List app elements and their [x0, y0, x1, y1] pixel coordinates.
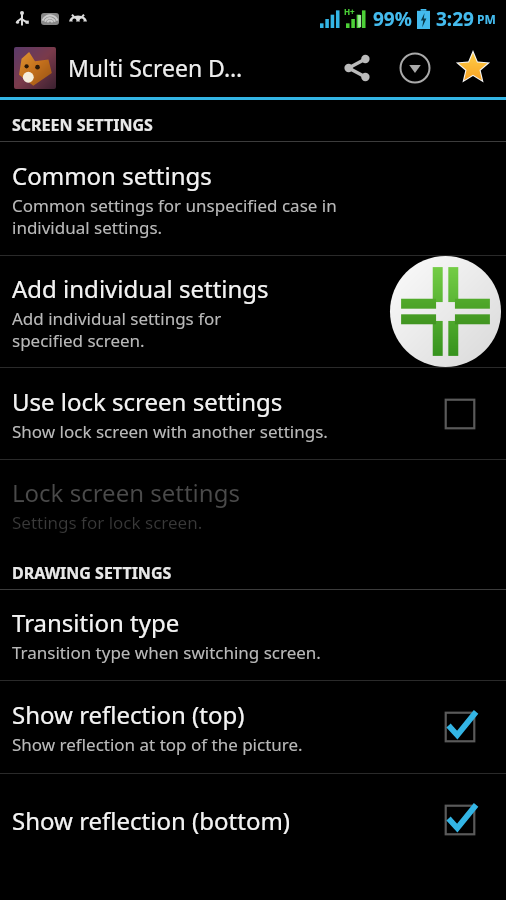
staticText: Add individual settings for specified sc… [12, 307, 222, 352]
staticText: 99% [373, 6, 412, 32]
button[interactable]: Add individual settings [0, 256, 506, 367]
staticText: Show reflection at top of the picture. [12, 733, 303, 756]
button[interactable]: Common settings [0, 142, 506, 255]
staticText: Show lock screen with another settings. [12, 420, 328, 443]
button[interactable]: More options [386, 39, 444, 97]
staticText: Lock screen settings [12, 476, 240, 509]
staticText: Add individual settings [12, 272, 269, 305]
staticText: Show reflection (bottom) [12, 804, 291, 837]
staticText: SCREEN SETTINGS [12, 114, 153, 136]
staticText: Use lock screen settings [12, 385, 283, 418]
staticText: PM [477, 11, 496, 27]
button[interactable]: Favorite [444, 39, 502, 97]
button[interactable]: Transition type [0, 590, 506, 680]
staticText: Settings for lock screen. [12, 511, 203, 534]
button[interactable]: Use lock screen settings [0, 368, 506, 459]
button[interactable]: Show reflection (top) [0, 681, 506, 773]
staticText: Transition type [12, 606, 180, 639]
staticText: 3:29 [436, 6, 474, 32]
staticText: H+ [344, 6, 355, 17]
staticText: Common settings for unspecified case in … [12, 194, 337, 239]
staticText: Transition type when switching screen. [12, 641, 321, 664]
staticText: Show reflection (top) [12, 698, 245, 731]
button[interactable]: Share [328, 39, 386, 97]
staticText: DRAWING SETTINGS [12, 562, 172, 584]
button[interactable]: Show reflection (bottom) [0, 774, 506, 866]
staticText: Multi Screen D… [68, 52, 328, 83]
button: Lock screen settings [0, 460, 506, 550]
staticText: Common settings [12, 159, 212, 192]
